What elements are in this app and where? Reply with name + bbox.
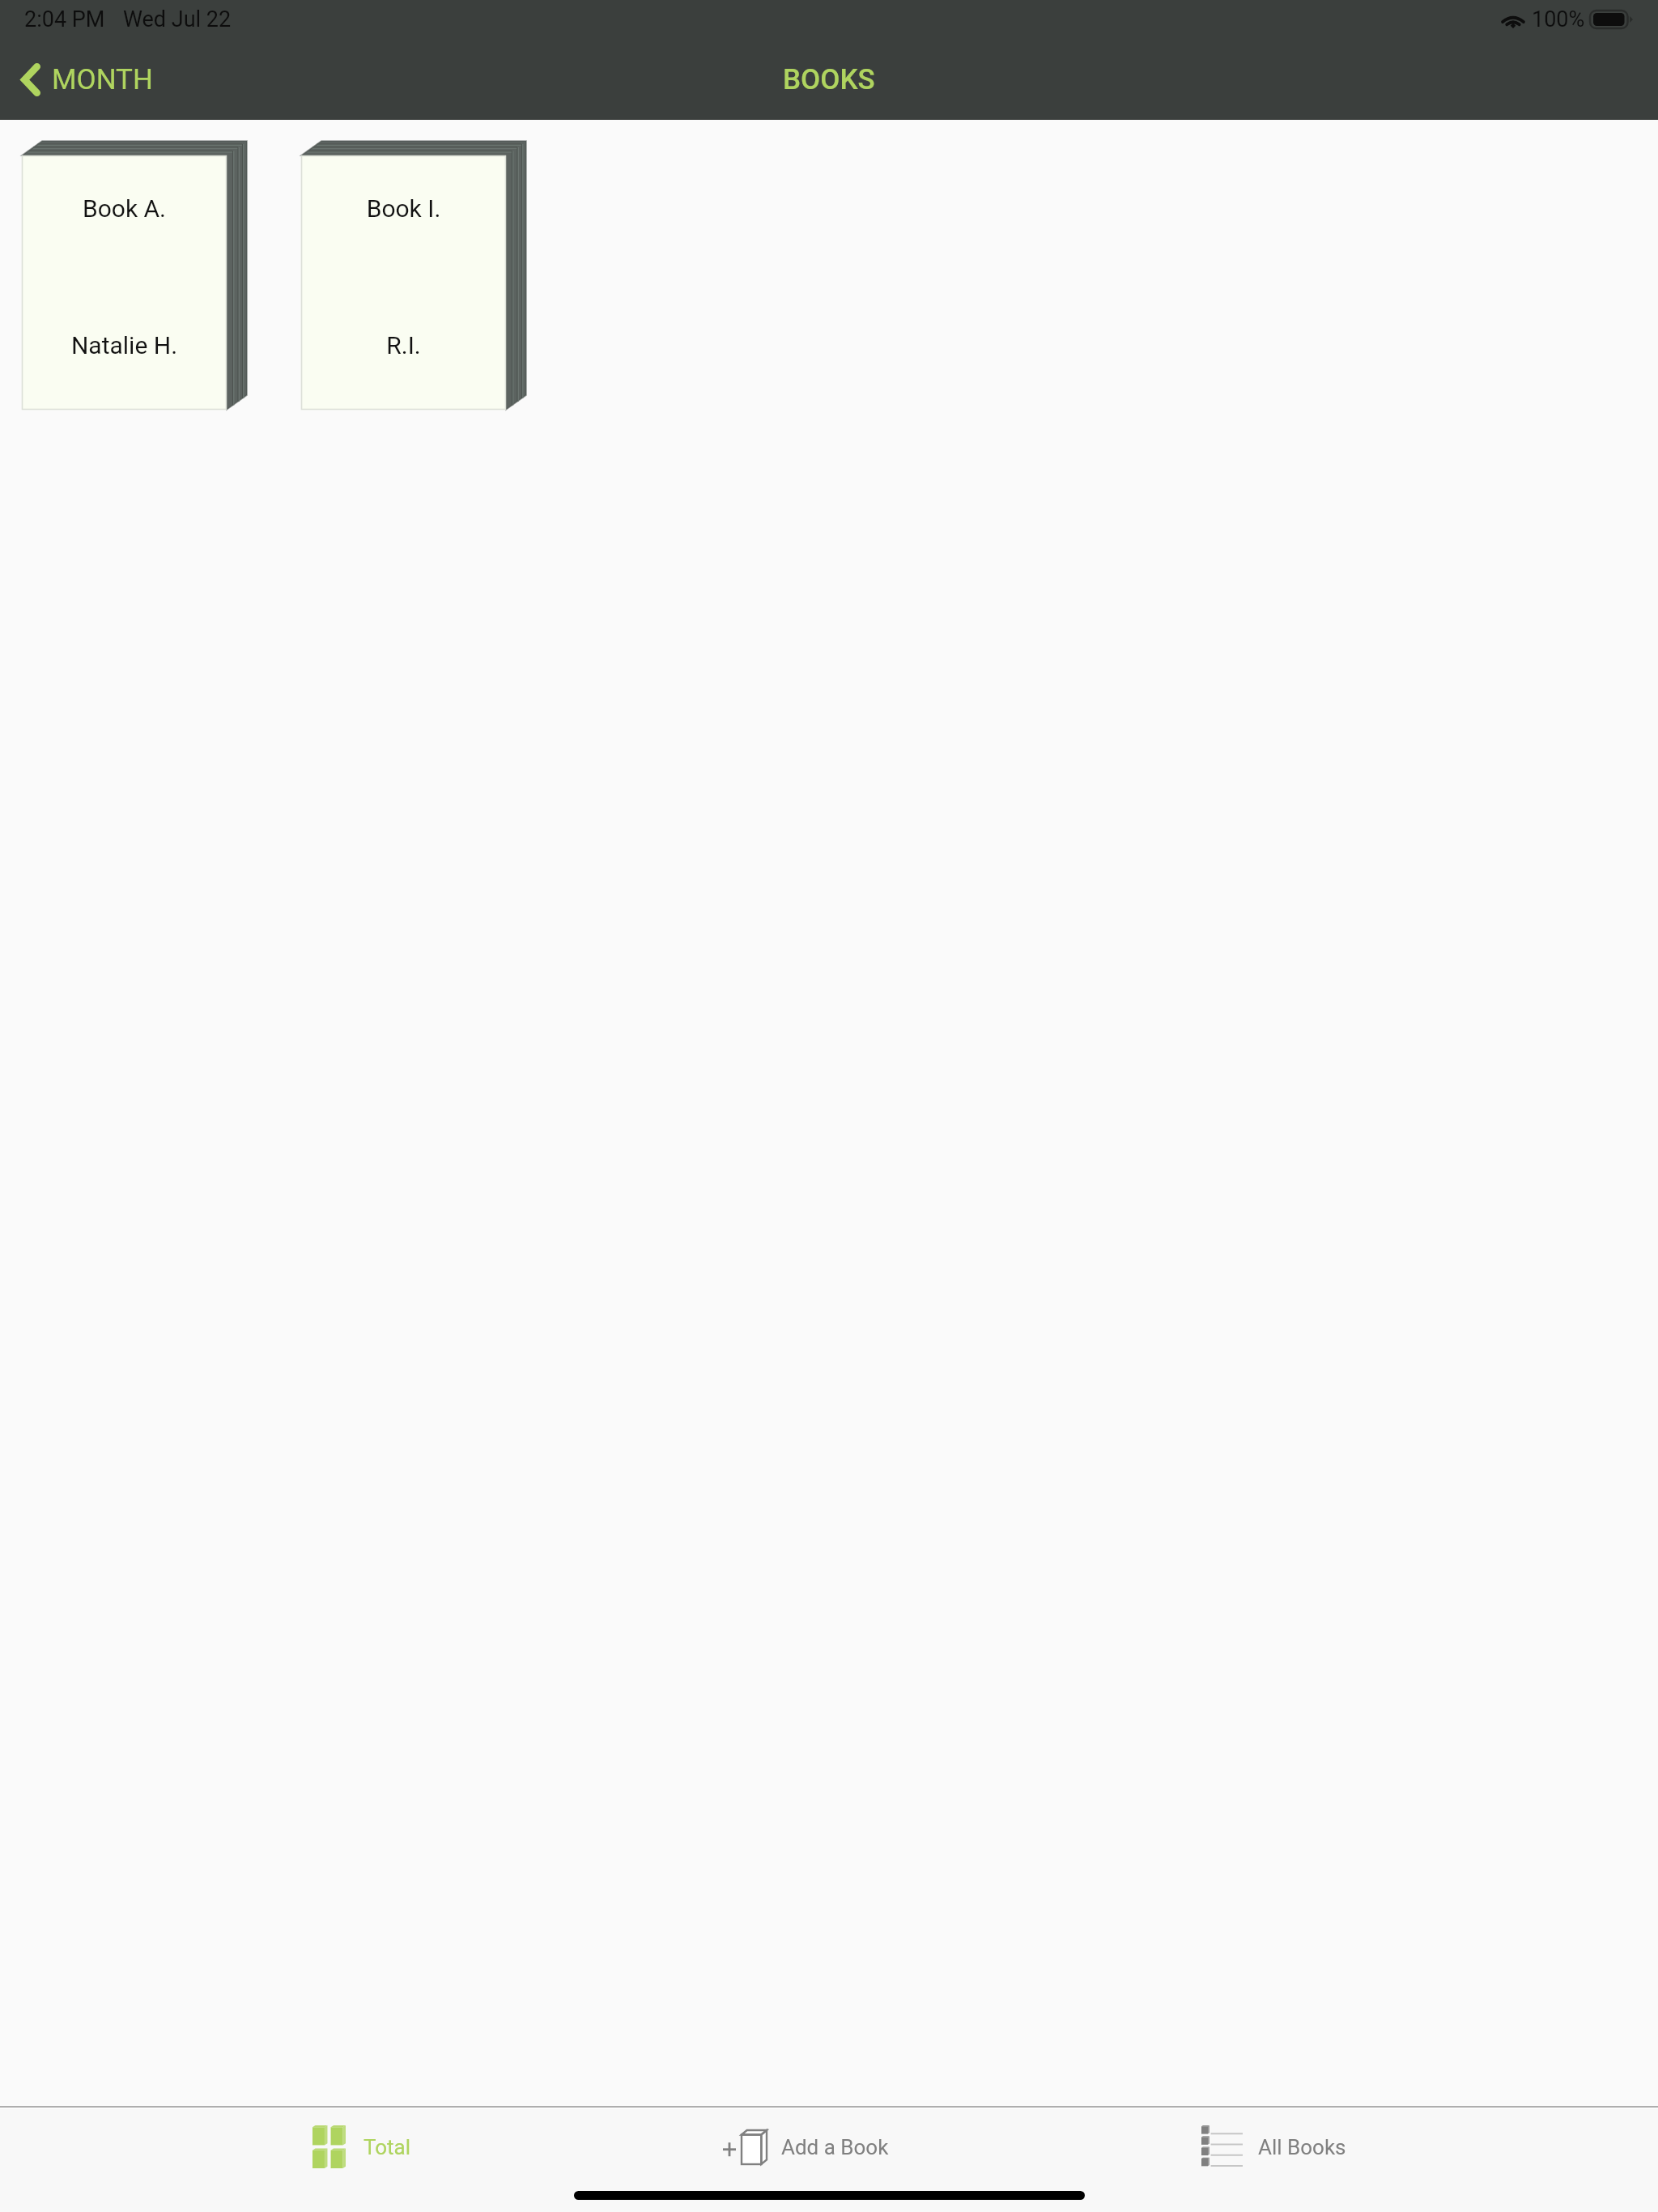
button[interactable]: Book I. by R.I. — [301, 141, 526, 410]
staticText: 2:04 PM — [24, 6, 105, 32]
button[interactable]: All Books — [1201, 2125, 1346, 2168]
staticText: MONTH — [52, 63, 153, 96]
staticText: All Books — [1258, 2135, 1346, 2159]
staticText: Book A. — [22, 194, 227, 223]
button[interactable]: Back to Month — [0, 53, 168, 106]
staticText: Total — [363, 2135, 411, 2159]
staticText: 100% — [1532, 6, 1585, 32]
staticText: Wed Jul 22 — [123, 6, 232, 32]
button[interactable]: Total — [312, 2125, 411, 2168]
staticText: Natalie H. — [22, 331, 227, 359]
staticText: Add a Book — [781, 2135, 889, 2159]
staticText: R.I. — [301, 331, 506, 359]
button[interactable]: Add a Book — [723, 2130, 889, 2164]
button[interactable]: Book A. by Natalie H. — [22, 141, 247, 410]
staticText: Book I. — [301, 194, 506, 223]
staticText: BOOKS — [783, 63, 875, 96]
